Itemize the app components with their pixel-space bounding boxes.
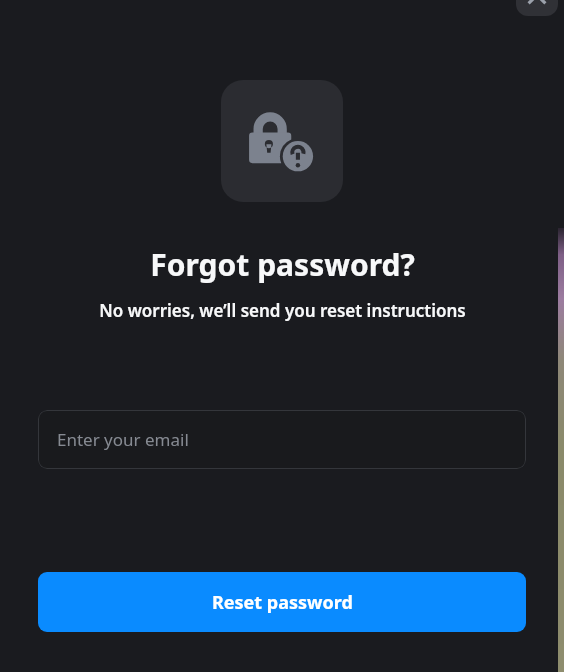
- staticText: Reset password: [212, 590, 353, 615]
- staticText: Forgot password?: [150, 244, 415, 285]
- staticText: No worries, we’ll send you reset instruc…: [99, 299, 466, 322]
- staticText: Enter your email: [57, 428, 189, 451]
- button[interactable]: Close: [516, 0, 558, 16]
- button[interactable]: Reset password: [38, 572, 526, 632]
- button[interactable]: Enter your email: [38, 410, 526, 469]
